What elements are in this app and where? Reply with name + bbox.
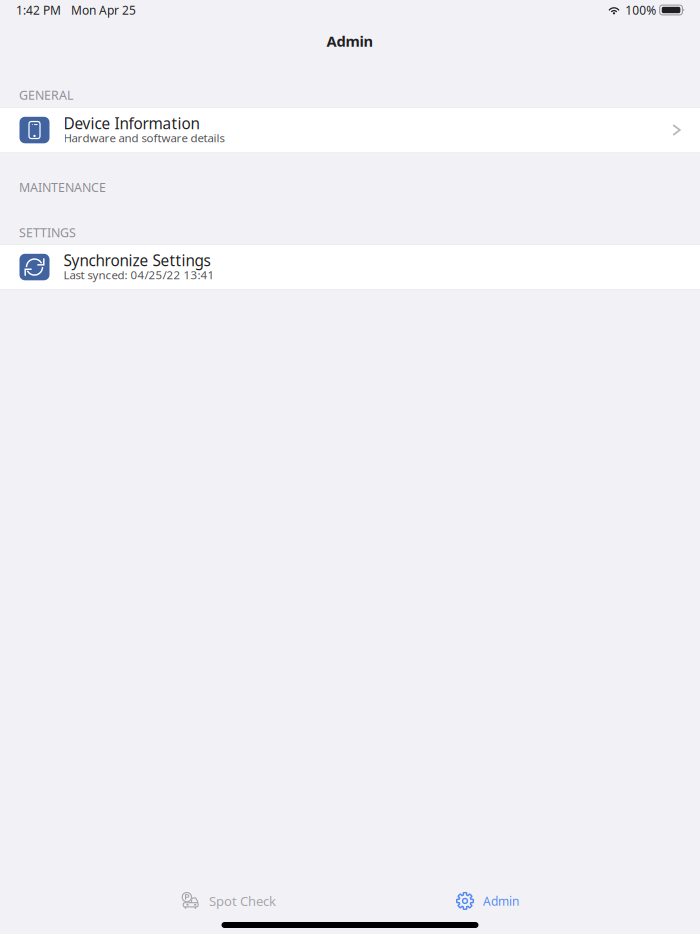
staticText: 100%	[625, 2, 656, 18]
button[interactable]: Device Information	[0, 107, 700, 153]
staticText: Spot Check	[209, 892, 276, 910]
staticText: Last synced: 04/25/22 13:41	[63, 267, 214, 282]
staticText: Device Information	[63, 113, 199, 134]
staticText: Admin	[326, 31, 373, 51]
button[interactable]: Admin	[455, 885, 519, 917]
staticText: MAINTENANCE	[19, 179, 106, 196]
button[interactable]: Spot Check	[181, 885, 276, 917]
staticText: 1:42 PM	[16, 2, 61, 18]
staticText: Admin	[483, 893, 519, 909]
button[interactable]: Synchronize Settings	[0, 244, 700, 290]
staticText: SETTINGS	[19, 224, 76, 241]
staticText: Mon Apr 25	[71, 2, 136, 18]
staticText: Synchronize Settings	[63, 250, 210, 271]
staticText: GENERAL	[19, 87, 73, 103]
staticText: Hardware and software details	[63, 130, 224, 145]
